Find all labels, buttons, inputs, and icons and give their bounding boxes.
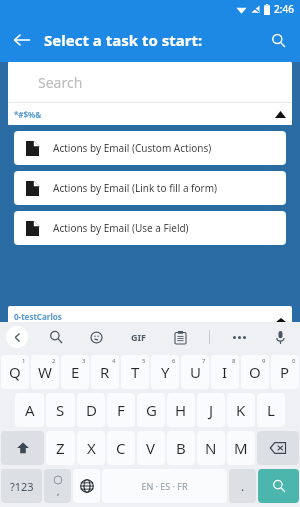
button[interactable]: M <box>227 431 255 465</box>
staticText: G <box>146 400 157 420</box>
button[interactable]: Back <box>0 18 44 62</box>
button[interactable]: A <box>15 393 44 427</box>
button[interactable]: O <box>241 355 269 389</box>
staticText: M <box>234 438 248 458</box>
button[interactable]: Backspace <box>257 431 299 465</box>
button[interactable]: . <box>229 469 256 503</box>
staticText: N <box>205 438 217 458</box>
staticText: J <box>209 400 214 420</box>
button[interactable]: U <box>181 355 209 389</box>
button[interactable]: C <box>107 431 135 465</box>
button[interactable]: *#$%& <box>8 103 292 125</box>
staticText: *#$%& <box>14 109 42 120</box>
button[interactable]: P <box>271 355 299 389</box>
staticText: W <box>38 362 52 382</box>
button[interactable]: Search <box>8 62 292 102</box>
staticText: 1 <box>22 357 26 365</box>
staticText: R <box>100 362 110 382</box>
button[interactable]: B <box>167 431 195 465</box>
staticText: 2:46 <box>274 2 294 16</box>
button[interactable]: Collapse toolbar <box>6 326 28 348</box>
button[interactable]: H <box>167 393 195 427</box>
button[interactable]: Clipboard <box>168 325 192 349</box>
button[interactable]: Voice input <box>268 325 292 349</box>
button[interactable]: J <box>197 393 225 427</box>
staticText: Actions by Email (Link to fill a form) <box>53 181 218 195</box>
button[interactable]: Emoji and comma <box>44 469 71 503</box>
staticText: 3 <box>82 357 86 365</box>
button[interactable]: Actions by Email (Use a Field) <box>14 211 286 245</box>
staticText: I <box>222 362 228 382</box>
button[interactable]: Search <box>44 325 68 349</box>
staticText: Select a task to start: <box>44 30 203 50</box>
button[interactable]: Search <box>258 469 299 503</box>
button[interactable]: E <box>61 355 89 389</box>
staticText: E <box>71 362 80 382</box>
button[interactable]: R <box>91 355 119 389</box>
button[interactable]: More options <box>227 325 251 349</box>
button[interactable]: ?123 <box>1 469 42 503</box>
staticText: 4 <box>112 357 116 365</box>
button[interactable]: GIF <box>125 324 151 350</box>
staticText: V <box>146 438 156 458</box>
staticText: Actions by Email (Custom Actions) <box>53 141 212 155</box>
button[interactable]: F <box>107 393 135 427</box>
staticText: X <box>87 438 96 458</box>
staticText: 2 <box>52 357 56 365</box>
staticText: P <box>280 362 290 382</box>
staticText: C <box>116 438 126 458</box>
staticText: A <box>25 400 35 420</box>
button[interactable]: Shift <box>1 431 44 465</box>
staticText: 6 <box>172 357 176 365</box>
button[interactable]: K <box>227 393 255 427</box>
staticText: Actions by Email (Use a Field) <box>53 221 189 235</box>
button[interactable]: L <box>257 393 285 427</box>
staticText: 9 <box>262 357 266 365</box>
staticText: GIF <box>131 331 146 343</box>
staticText: . <box>241 478 245 494</box>
button[interactable]: Q <box>1 355 29 389</box>
staticText: 8 <box>232 357 236 365</box>
button[interactable]: G <box>137 393 165 427</box>
staticText: D <box>86 400 97 420</box>
staticText: K <box>236 400 246 420</box>
button[interactable]: Stickers <box>84 325 108 349</box>
button[interactable]: Actions by Email (Custom Actions) <box>14 131 286 165</box>
staticText: U <box>190 362 201 382</box>
staticText: Search <box>38 73 83 92</box>
staticText: S <box>56 400 65 420</box>
staticText: Z <box>56 438 65 458</box>
button[interactable]: 0-testCarlos <box>8 306 292 322</box>
staticText: Q <box>9 362 21 382</box>
button[interactable]: Z <box>46 431 75 465</box>
staticText: ?123 <box>10 479 34 494</box>
button[interactable]: Y <box>151 355 179 389</box>
staticText: 7 <box>202 357 206 365</box>
button[interactable]: S <box>46 393 75 427</box>
button[interactable]: T <box>121 355 149 389</box>
staticText: 5 <box>142 357 146 365</box>
staticText: T <box>131 362 140 382</box>
staticText: 0-testCarlos <box>14 311 62 322</box>
button[interactable]: EN · ES · FR <box>102 469 227 503</box>
button[interactable]: Change language <box>73 469 100 503</box>
staticText: Y <box>161 362 170 382</box>
button[interactable]: N <box>197 431 225 465</box>
button[interactable]: X <box>77 431 105 465</box>
button[interactable]: I <box>211 355 239 389</box>
button[interactable]: Search <box>256 18 300 62</box>
button[interactable]: V <box>137 431 165 465</box>
button[interactable]: W <box>31 355 59 389</box>
staticText: 0 <box>292 357 296 365</box>
staticText: B <box>176 438 186 458</box>
staticText: , <box>57 485 60 497</box>
staticText: O <box>249 362 261 382</box>
staticText: EN · ES · FR <box>141 480 188 492</box>
button[interactable]: Actions by Email (Link to fill a form) <box>14 171 286 205</box>
staticText: H <box>175 400 187 420</box>
staticText: F <box>117 400 125 420</box>
button[interactable]: D <box>77 393 105 427</box>
staticText: L <box>267 400 275 420</box>
